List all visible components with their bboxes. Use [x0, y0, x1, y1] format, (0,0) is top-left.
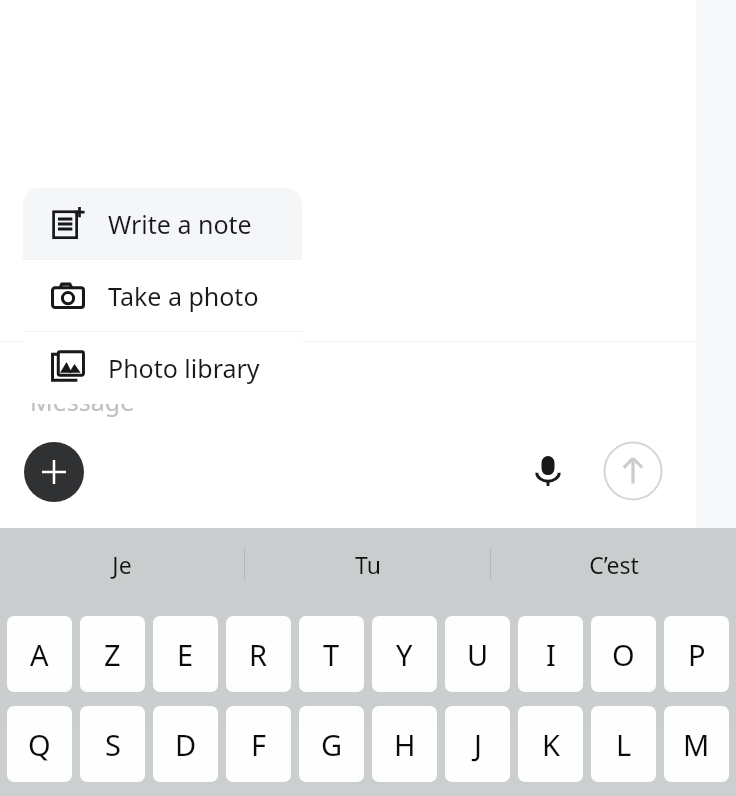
button[interactable]: U	[445, 616, 510, 692]
button[interactable]: Write a note	[23, 188, 302, 259]
button[interactable]: Add attachment	[24, 442, 84, 502]
staticText: L	[616, 725, 632, 764]
staticText: Z	[104, 635, 121, 674]
staticText: Photo library	[108, 351, 260, 385]
button[interactable]: S	[80, 706, 145, 782]
staticText: F	[251, 725, 267, 764]
staticText: D	[175, 725, 197, 764]
button[interactable]: Z	[80, 616, 145, 692]
staticText: M	[683, 725, 710, 764]
button[interactable]: G	[299, 706, 364, 782]
button[interactable]: R	[226, 616, 291, 692]
staticText: K	[542, 725, 560, 764]
button[interactable]: Photo library	[23, 332, 302, 403]
staticText: P	[688, 635, 706, 674]
button[interactable]: T	[299, 616, 364, 692]
button[interactable]: M	[664, 706, 729, 782]
staticText: E	[177, 635, 194, 674]
button[interactable]: Send	[603, 441, 663, 501]
staticText: Message	[30, 384, 135, 418]
button[interactable]: L	[591, 706, 656, 782]
button[interactable]: Y	[372, 616, 437, 692]
staticText: Je	[112, 549, 132, 580]
button[interactable]: I	[518, 616, 583, 692]
staticText: I	[546, 635, 556, 674]
staticText: H	[394, 725, 416, 764]
staticText: G	[321, 725, 343, 764]
staticText: J	[474, 725, 482, 764]
button[interactable]: Q	[7, 706, 72, 782]
button[interactable]: Take a photo	[23, 260, 302, 331]
button[interactable]: D	[153, 706, 218, 782]
staticText: Y	[396, 635, 413, 674]
button[interactable]: K	[518, 706, 583, 782]
staticText: Tu	[355, 549, 381, 580]
button[interactable]: C’est	[491, 528, 736, 600]
button[interactable]: H	[372, 706, 437, 782]
button[interactable]: Tu	[245, 528, 490, 600]
staticText: O	[612, 635, 635, 674]
staticText: Take a photo	[108, 279, 259, 313]
button[interactable]: P	[664, 616, 729, 692]
staticText: C’est	[589, 549, 639, 580]
button[interactable]: Je	[0, 528, 244, 600]
staticText: Write a note	[108, 207, 252, 241]
staticText: R	[249, 635, 268, 674]
staticText: Q	[28, 725, 51, 764]
button[interactable]: J	[445, 706, 510, 782]
button[interactable]: A	[7, 616, 72, 692]
button[interactable]: Voice input	[519, 442, 577, 500]
staticText: A	[30, 635, 49, 674]
button[interactable]: F	[226, 706, 291, 782]
button[interactable]: E	[153, 616, 218, 692]
button[interactable]: O	[591, 616, 656, 692]
staticText: S	[105, 725, 121, 764]
staticText: U	[467, 635, 489, 674]
staticText: T	[323, 635, 340, 674]
